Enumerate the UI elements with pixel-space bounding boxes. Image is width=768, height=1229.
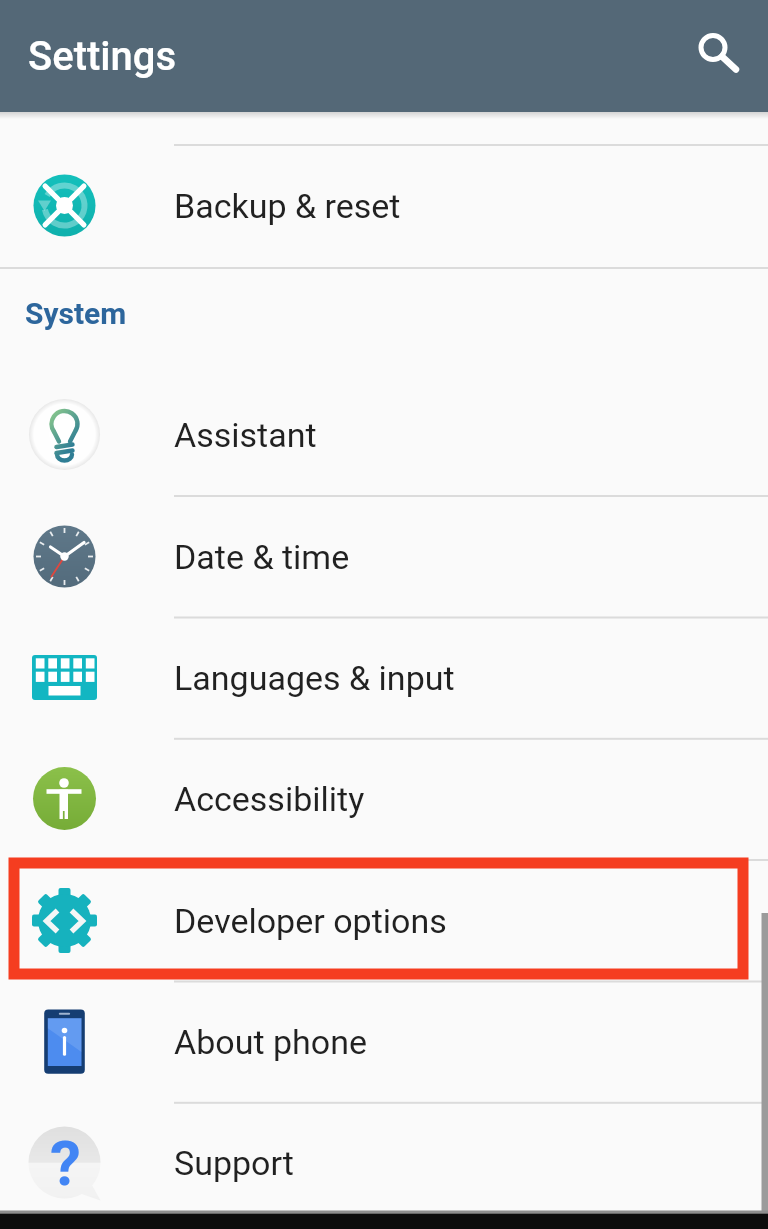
staticText: Date & time (174, 537, 350, 577)
staticText: Backup & reset (174, 186, 401, 226)
staticText: System (25, 296, 127, 331)
button[interactable]: Support (0, 1102, 768, 1223)
staticText: Support (174, 1143, 294, 1183)
button[interactable] (0, 0, 768, 112)
button[interactable]: Assistant (0, 374, 768, 495)
button[interactable]: Backup & reset (0, 145, 768, 266)
staticText: Languages & input (174, 658, 455, 698)
button[interactable]: Date & time (0, 496, 768, 617)
button[interactable]: Languages & input (0, 617, 768, 738)
button[interactable]: Accessibility (0, 738, 768, 859)
staticText: Settings (28, 33, 177, 80)
staticText: About phone (174, 1022, 367, 1062)
staticText: Accessibility (174, 779, 365, 819)
button[interactable]: About phone (0, 981, 768, 1102)
button[interactable]: Developer options (0, 860, 768, 981)
staticText: ? (50, 1127, 81, 1200)
staticText: Developer options (174, 901, 447, 941)
staticText: Assistant (174, 415, 317, 455)
